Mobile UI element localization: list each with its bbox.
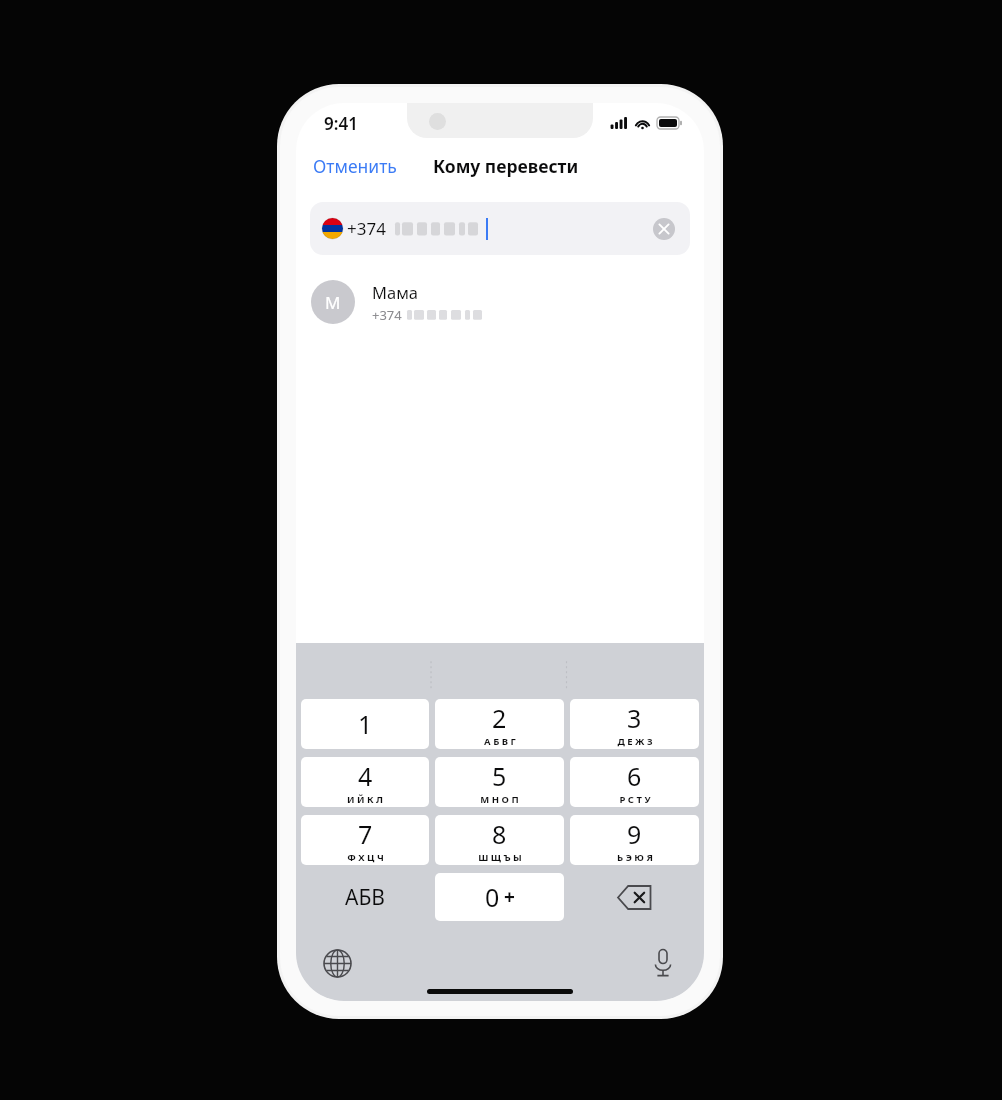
staticText: 9:41 <box>324 112 358 135</box>
staticText: Д Е Ж З <box>617 735 653 748</box>
staticText: Кому перевести <box>433 154 579 178</box>
button[interactable]: 3 <box>570 699 699 749</box>
staticText: 3 <box>627 701 642 735</box>
button[interactable]: АБВ <box>301 869 429 925</box>
button[interactable]: Удалить <box>570 869 699 925</box>
staticText: А Б В Г <box>484 735 516 748</box>
staticText: 2 <box>492 701 507 735</box>
staticText: 0 <box>485 880 500 914</box>
staticText: Мама <box>372 281 418 303</box>
button[interactable]: 8 <box>435 815 564 865</box>
button[interactable]: Отменить <box>296 148 407 184</box>
button[interactable]: 6 <box>570 757 699 807</box>
button[interactable]: Сменить язык <box>320 946 354 980</box>
staticText: Отменить <box>313 154 397 178</box>
staticText: 5 <box>492 759 507 793</box>
button[interactable]: 1 <box>301 699 429 749</box>
button[interactable]: 4 <box>301 757 429 807</box>
staticText: Р С Т У <box>619 793 651 806</box>
staticText: +374 <box>372 306 402 324</box>
button[interactable]: M <box>296 276 704 328</box>
button[interactable]: 0 <box>435 873 564 921</box>
button[interactable]: 5 <box>435 757 564 807</box>
button[interactable]: Голосовой ввод <box>646 946 680 980</box>
staticText: 9 <box>627 817 642 851</box>
staticText: Ф Х Ц Ч <box>347 851 384 864</box>
staticText: И Й К Л <box>347 793 383 806</box>
staticText: 1 <box>358 707 373 741</box>
button[interactable]: 9 <box>570 815 699 865</box>
button[interactable]: Очистить <box>653 218 675 240</box>
staticText: 8 <box>492 817 507 851</box>
staticText: М Н О П <box>480 793 519 806</box>
staticText: 7 <box>358 817 373 851</box>
staticText: 4 <box>358 759 373 793</box>
staticText: АБВ <box>345 883 385 912</box>
staticText: 6 <box>627 759 642 793</box>
button[interactable]: 7 <box>301 815 429 865</box>
staticText: +374 <box>347 217 386 240</box>
staticText: + <box>504 884 515 910</box>
staticText: M <box>325 291 341 314</box>
button[interactable]: +374 <box>310 202 690 255</box>
staticText: Ь Э Ю Я <box>617 851 653 864</box>
button[interactable]: 2 <box>435 699 564 749</box>
staticText: Ш Щ Ъ Ы <box>478 851 522 864</box>
